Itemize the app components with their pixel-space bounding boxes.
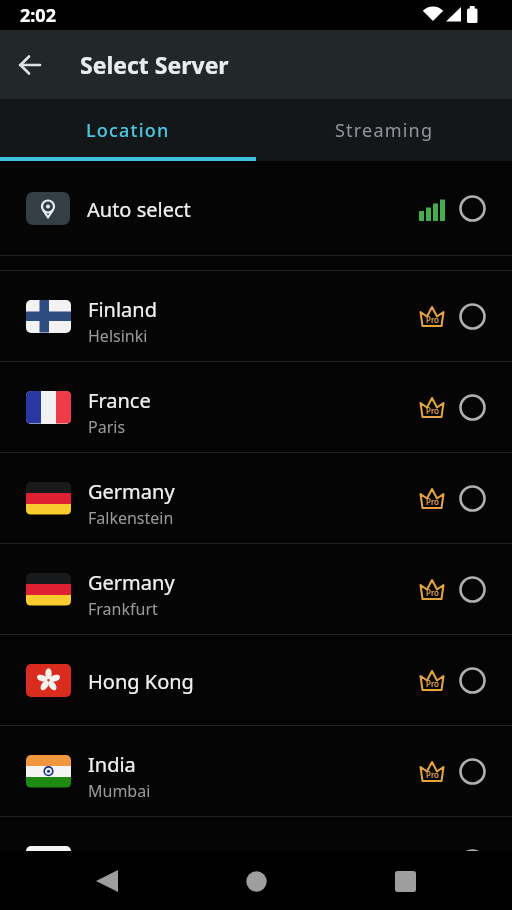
staticText: Select Server [80, 49, 229, 80]
staticText: 2:02 [20, 3, 56, 28]
staticText: Hong Kong [88, 668, 194, 695]
staticText: Germany [88, 478, 175, 505]
button[interactable] [0, 30, 60, 99]
staticText: Finland [88, 296, 157, 323]
staticText: Streaming [335, 118, 434, 143]
staticText: Auto select [87, 196, 418, 223]
staticText: Mumbai [88, 780, 151, 802]
staticText: Helsinki [88, 325, 148, 347]
staticText: India [88, 751, 136, 778]
staticText: Pro [426, 405, 439, 416]
staticText: Pro [426, 314, 439, 325]
staticText: Pro [426, 769, 439, 780]
button[interactable]: Streaming [256, 99, 512, 161]
button[interactable]: Japan [0, 817, 512, 851]
button[interactable]: Hong Kong [0, 635, 512, 725]
button[interactable] [83, 857, 131, 905]
button[interactable] [381, 857, 429, 905]
button[interactable] [232, 857, 280, 905]
button[interactable]: Finland [0, 271, 512, 361]
button[interactable]: Location [0, 99, 256, 161]
staticText: Pro [426, 678, 439, 689]
staticText: Paris [88, 416, 126, 438]
staticText: Pro [426, 496, 439, 507]
button[interactable]: France [0, 362, 512, 452]
staticText: Location [86, 118, 170, 143]
staticText: Germany [88, 569, 175, 596]
button[interactable]: India [0, 726, 512, 816]
staticText: Falkenstein [88, 507, 174, 529]
button[interactable]: Germany [0, 544, 512, 634]
staticText: France [88, 387, 151, 414]
staticText: Pro [426, 587, 439, 598]
button[interactable]: Auto select [0, 161, 512, 255]
button[interactable]: Germany [0, 453, 512, 543]
staticText: Frankfurt [88, 598, 158, 620]
